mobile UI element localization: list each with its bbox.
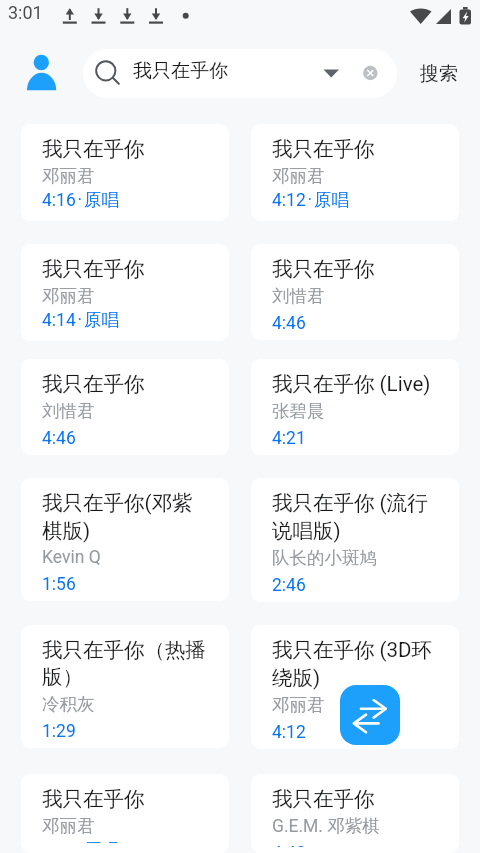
staticText: 邓丽君 bbox=[42, 165, 95, 187]
staticText: 队长的小斑鸠 bbox=[272, 547, 377, 569]
staticText: 邓丽君 bbox=[42, 815, 95, 837]
staticText: 冷积灰 bbox=[42, 693, 95, 715]
staticText: Kevin Q bbox=[42, 547, 101, 568]
button[interactable]: 我只在乎你 bbox=[21, 244, 229, 341]
staticText: 张碧晨 bbox=[272, 400, 325, 422]
button[interactable]: 我只在乎你 (Live) bbox=[251, 359, 459, 455]
button[interactable]: 我只在乎你 bbox=[251, 244, 459, 340]
staticText: 4:12 · 原唱 bbox=[272, 189, 349, 211]
button[interactable]: 我只在乎你 bbox=[251, 774, 459, 853]
staticText: 我只在乎你 bbox=[272, 786, 375, 812]
staticText: 1:29 bbox=[42, 721, 76, 742]
button[interactable]: 我只在乎你 bbox=[83, 49, 397, 98]
staticText: 我只在乎你 bbox=[42, 371, 145, 397]
staticText: 4:21 bbox=[272, 428, 306, 449]
button[interactable]: 我只在乎你（热播版） bbox=[21, 625, 229, 748]
staticText: 我只在乎你 bbox=[272, 136, 375, 162]
staticText: 我只在乎你(邓紫棋版) bbox=[42, 490, 208, 544]
button[interactable]: 我只在乎你 (流行说唱版) bbox=[251, 478, 459, 602]
staticText: 4:40 bbox=[272, 843, 306, 847]
button[interactable]: Expand search options bbox=[318, 60, 345, 87]
staticText: 我只在乎你 bbox=[42, 136, 145, 162]
button[interactable]: 我只在乎你 bbox=[21, 359, 229, 455]
staticText: 我只在乎你（热播版） bbox=[42, 637, 208, 690]
button[interactable]: Switch songs bbox=[340, 685, 400, 745]
staticText: 4:46 bbox=[272, 313, 306, 334]
button[interactable]: 我只在乎你(邓紫棋版) bbox=[21, 478, 229, 601]
staticText: 4:12 · 原唱 bbox=[42, 839, 119, 843]
button[interactable]: 我只在乎你 bbox=[21, 774, 229, 853]
staticText: 4:12 bbox=[272, 722, 306, 743]
staticText: 我只在乎你 bbox=[42, 256, 145, 282]
button[interactable]: Profile bbox=[21, 49, 62, 98]
staticText: 我只在乎你 (3D环绕版) bbox=[272, 637, 438, 691]
staticText: 4:46 bbox=[42, 428, 76, 449]
staticText: 3:01 bbox=[8, 2, 43, 23]
staticText: 4:14 · 原唱 bbox=[42, 309, 119, 331]
staticText: 邓丽君 bbox=[42, 285, 95, 307]
staticText: 4:16 · 原唱 bbox=[42, 189, 119, 211]
button[interactable]: 我只在乎你 bbox=[21, 124, 229, 221]
staticText: G.E.M. 邓紫棋 bbox=[272, 815, 380, 837]
staticText: 1:56 bbox=[42, 574, 76, 595]
staticText: 邓丽君 bbox=[272, 694, 325, 716]
staticText: 我只在乎你 bbox=[133, 59, 228, 83]
button[interactable]: 我只在乎你 (3D环绕版) bbox=[251, 625, 459, 749]
staticText: 2:46 bbox=[272, 575, 306, 596]
staticText: 搜索 bbox=[420, 62, 458, 86]
staticText: 我只在乎你 (Live) bbox=[272, 371, 431, 397]
staticText: 邓丽君 bbox=[272, 165, 325, 187]
staticText: 我只在乎你 bbox=[272, 256, 375, 282]
staticText: 刘惜君 bbox=[272, 285, 325, 307]
button[interactable]: 搜索 bbox=[409, 49, 469, 98]
button[interactable]: Clear query bbox=[357, 60, 384, 87]
staticText: 刘惜君 bbox=[42, 400, 95, 422]
staticText: 我只在乎你 bbox=[42, 786, 145, 812]
staticText: 我只在乎你 (流行说唱版) bbox=[272, 490, 438, 544]
button[interactable]: 我只在乎你 bbox=[251, 124, 459, 221]
